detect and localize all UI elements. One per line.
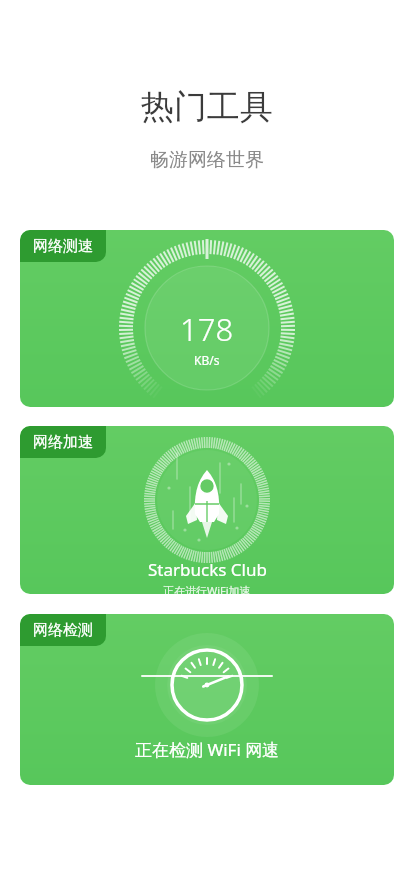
button[interactable]: 网络测速 xyxy=(20,230,106,262)
staticText: 热门工具 xyxy=(0,86,414,128)
staticText: 正在进行WiFi加速 xyxy=(163,583,251,594)
staticText: 正在检测 WiFi 网速 xyxy=(135,738,280,761)
staticText: 网络加速 xyxy=(33,433,93,452)
staticText: 178 xyxy=(180,308,234,350)
button[interactable]: 网络检测 xyxy=(20,614,106,646)
staticText: Starbucks Club xyxy=(148,558,267,581)
staticText: 网络检测 xyxy=(33,621,93,640)
staticText: KB/s xyxy=(194,352,220,368)
button[interactable]: Starbucks Club xyxy=(20,426,394,594)
staticText: 网络测速 xyxy=(33,237,93,256)
button[interactable]: 正在检测 WiFi 网速 xyxy=(20,614,394,785)
button[interactable]: 178 xyxy=(20,230,394,407)
staticText: 畅游网络世界 xyxy=(0,148,414,172)
button[interactable]: 网络加速 xyxy=(20,426,106,458)
